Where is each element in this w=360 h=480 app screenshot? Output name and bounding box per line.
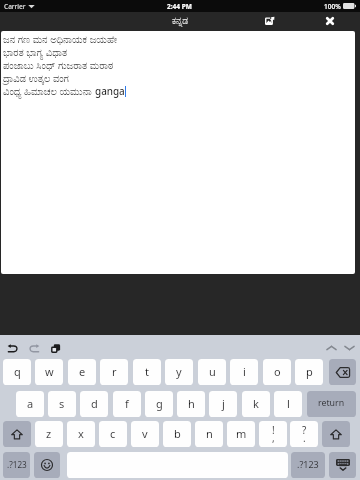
staticText: v — [142, 426, 148, 441]
staticText: ganga — [95, 84, 125, 97]
staticText: p — [306, 364, 313, 379]
button[interactable]: a — [16, 391, 44, 417]
staticText: c — [110, 426, 116, 441]
button[interactable]: Undo — [2, 338, 22, 358]
button[interactable]: Redo — [24, 338, 44, 358]
button[interactable]: Hide keyboard — [329, 452, 356, 478]
button[interactable]: return — [307, 391, 356, 417]
staticText: ಜನ ಗಣ ಮನ ಅಧಿನಾಯಕ ಜಯಹೇ — [3, 32, 117, 45]
staticText: z — [46, 426, 52, 441]
staticText: w — [45, 364, 54, 379]
staticText: ಭಾರತ ಭಾಗ್ಯ ವಿಧಾತ — [3, 45, 68, 58]
staticText: e — [79, 364, 86, 379]
staticText: m — [236, 426, 247, 441]
staticText: d — [91, 396, 98, 411]
button[interactable]: v — [131, 421, 159, 447]
staticText: .?123 — [297, 458, 319, 470]
button[interactable]: Backspace — [329, 359, 356, 385]
button[interactable]: m — [227, 421, 255, 447]
button[interactable]: q — [3, 359, 31, 385]
staticText: . — [303, 431, 306, 445]
button[interactable]: k — [242, 391, 270, 417]
staticText: Carrier — [4, 2, 26, 11]
staticText: ದ್ರಾವಿಡ ಉತ್ಕಲ ವಂಗ — [3, 71, 69, 84]
staticText: ವಿಂಧ್ಯ ಹಿಮಾಚಲ ಯಮುನಾ — [3, 84, 95, 97]
button[interactable]: p — [295, 359, 323, 385]
button[interactable]: ? — [290, 421, 318, 447]
staticText: h — [188, 396, 195, 411]
button[interactable]: Close — [316, 11, 343, 30]
button[interactable]: w — [35, 359, 63, 385]
staticText: ! — [272, 423, 275, 437]
button[interactable]: x — [67, 421, 95, 447]
button[interactable]: Shift — [3, 421, 31, 447]
staticText: i — [243, 364, 246, 379]
button[interactable]: t — [133, 359, 161, 385]
staticText: ಕನ್ನಡ — [172, 17, 189, 26]
staticText: a — [27, 396, 34, 411]
staticText: .?123 — [7, 459, 27, 470]
staticText: ಪಂಜಾಬು ಸಿಂಧ್ ಗುಜರಾತ ಮರಾಠ — [3, 58, 114, 71]
button[interactable]: Share — [256, 11, 283, 30]
button[interactable]: s — [48, 391, 76, 417]
staticText: s — [59, 396, 65, 411]
button[interactable]: l — [274, 391, 302, 417]
staticText: y — [176, 364, 182, 379]
button[interactable]: Emoji — [34, 452, 60, 478]
button[interactable]: .?123 — [3, 452, 30, 478]
staticText: x — [78, 426, 84, 441]
staticText: 100% — [324, 2, 341, 11]
button[interactable]: .?123 — [291, 452, 325, 478]
button[interactable]: Paste — [45, 338, 65, 358]
button[interactable]: c — [99, 421, 127, 447]
button[interactable]: Shift — [322, 421, 350, 447]
button[interactable]: Next — [339, 338, 359, 358]
button[interactable]: j — [209, 391, 237, 417]
staticText: g — [156, 396, 163, 411]
staticText: f — [125, 396, 129, 411]
button[interactable]: e — [68, 359, 96, 385]
button[interactable]: i — [230, 359, 258, 385]
staticText: , — [272, 431, 275, 445]
staticText: k — [253, 396, 259, 411]
button[interactable]: n — [195, 421, 223, 447]
staticText: 2:44 PM — [167, 2, 192, 11]
staticText: t — [145, 364, 149, 379]
button[interactable]: u — [198, 359, 226, 385]
button[interactable]: h — [177, 391, 205, 417]
button[interactable]: b — [163, 421, 191, 447]
staticText: b — [174, 426, 181, 441]
button[interactable]: Previous — [321, 338, 341, 358]
button[interactable]: d — [80, 391, 108, 417]
button[interactable]: o — [263, 359, 291, 385]
button[interactable]: y — [165, 359, 193, 385]
staticText: u — [209, 364, 216, 379]
button[interactable]: g — [145, 391, 173, 417]
staticText: l — [287, 396, 290, 411]
staticText: return — [318, 397, 345, 409]
staticText: j — [222, 396, 225, 411]
button[interactable]: f — [113, 391, 141, 417]
staticText: ? — [302, 423, 307, 437]
staticText: n — [206, 426, 213, 441]
staticText: o — [274, 364, 281, 379]
button[interactable]: r — [100, 359, 128, 385]
staticText: r — [112, 364, 117, 379]
button[interactable]: z — [35, 421, 63, 447]
staticText: q — [14, 364, 21, 379]
button[interactable]: ! — [259, 421, 287, 447]
